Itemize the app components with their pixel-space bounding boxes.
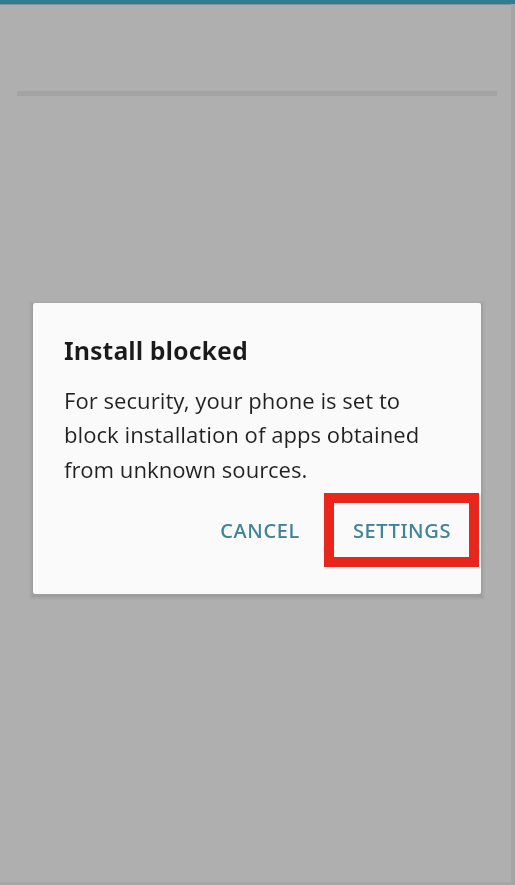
staticText: Install blocked [64,333,248,367]
staticText: For security, your phone is set to block… [64,385,420,485]
staticText: CANCEL [220,517,300,544]
staticText: SETTINGS [353,517,451,544]
button[interactable]: CANCEL [206,507,314,554]
button[interactable]: SETTINGS [324,493,479,567]
